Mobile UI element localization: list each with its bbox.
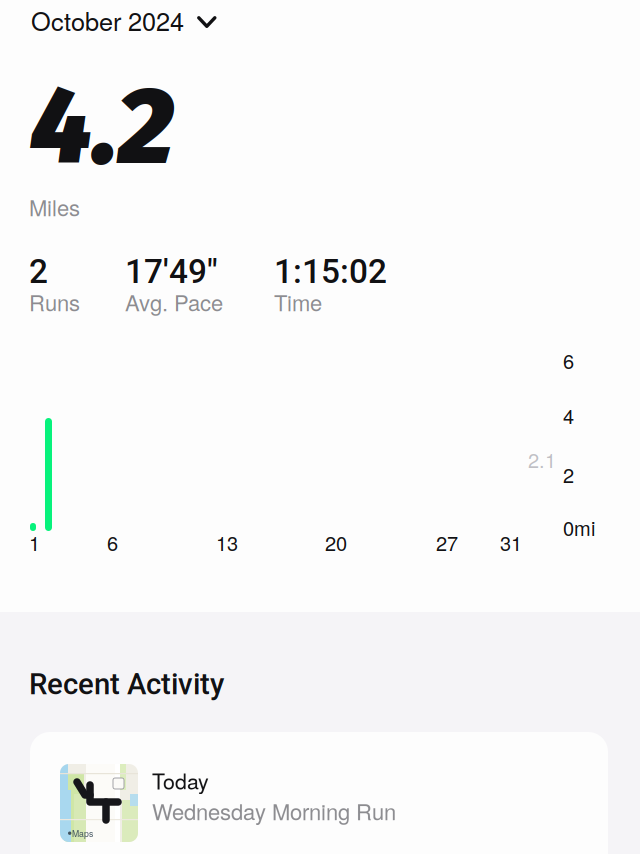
staticText: 6	[107, 528, 118, 557]
staticText: 2	[29, 252, 48, 291]
staticText: 4	[563, 401, 574, 430]
staticText: 6	[563, 346, 574, 375]
staticText: Maps	[72, 827, 93, 839]
staticText: 20	[325, 528, 347, 557]
staticText: 17'49"	[125, 252, 218, 291]
staticText: 4.2	[30, 62, 174, 192]
staticText: 31	[500, 528, 522, 557]
staticText: Avg. Pace	[125, 286, 223, 317]
staticText: Miles	[29, 191, 80, 222]
staticText: 27	[436, 528, 458, 557]
staticText: 0mi	[563, 513, 595, 542]
staticText: October 2024	[31, 2, 184, 38]
button[interactable]: October 2024	[30, 2, 230, 46]
staticText: Recent Activity	[29, 667, 224, 701]
button[interactable]: Maps	[30, 732, 608, 854]
staticText: Time	[274, 286, 322, 317]
staticText: 2	[563, 460, 574, 489]
staticText: Runs	[29, 286, 80, 317]
staticText: 1	[29, 528, 40, 557]
staticText: 1:15:02	[274, 252, 387, 291]
staticText: Today	[152, 765, 209, 795]
staticText: Wednesday Morning Run	[152, 795, 396, 826]
staticText: 2.1	[528, 445, 556, 474]
staticText: 13	[216, 528, 238, 557]
